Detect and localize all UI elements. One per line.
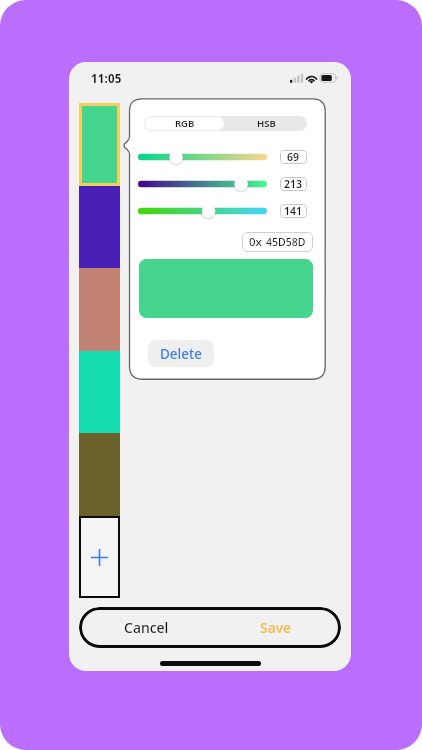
- button[interactable]: Channel 213: [136, 175, 269, 193]
- button[interactable]: Add colour: [81, 518, 118, 596]
- staticText: 11:05: [91, 71, 122, 87]
- staticText: 0x: [249, 234, 262, 250]
- button[interactable]: Channel 141: [136, 202, 269, 220]
- button[interactable]: 0x: [242, 232, 313, 252]
- button[interactable]: RGB: [145, 117, 224, 130]
- button[interactable]: [79, 186, 120, 269]
- staticText: 45D58D: [266, 235, 306, 249]
- staticText: 141: [284, 204, 303, 218]
- button[interactable]: HSB: [225, 116, 307, 131]
- staticText: 213: [284, 177, 303, 191]
- staticText: HSB: [257, 117, 276, 130]
- staticText: Cancel: [124, 618, 169, 637]
- staticText: Save: [260, 618, 292, 637]
- staticText: 69: [287, 150, 300, 164]
- button[interactable]: Save: [241, 607, 311, 648]
- staticText: RGB: [175, 117, 195, 130]
- button[interactable]: Delete: [148, 340, 214, 367]
- staticText: Delete: [160, 345, 202, 363]
- button[interactable]: [79, 351, 120, 434]
- button[interactable]: Cancel: [106, 607, 186, 648]
- button[interactable]: Channel 69: [136, 148, 269, 166]
